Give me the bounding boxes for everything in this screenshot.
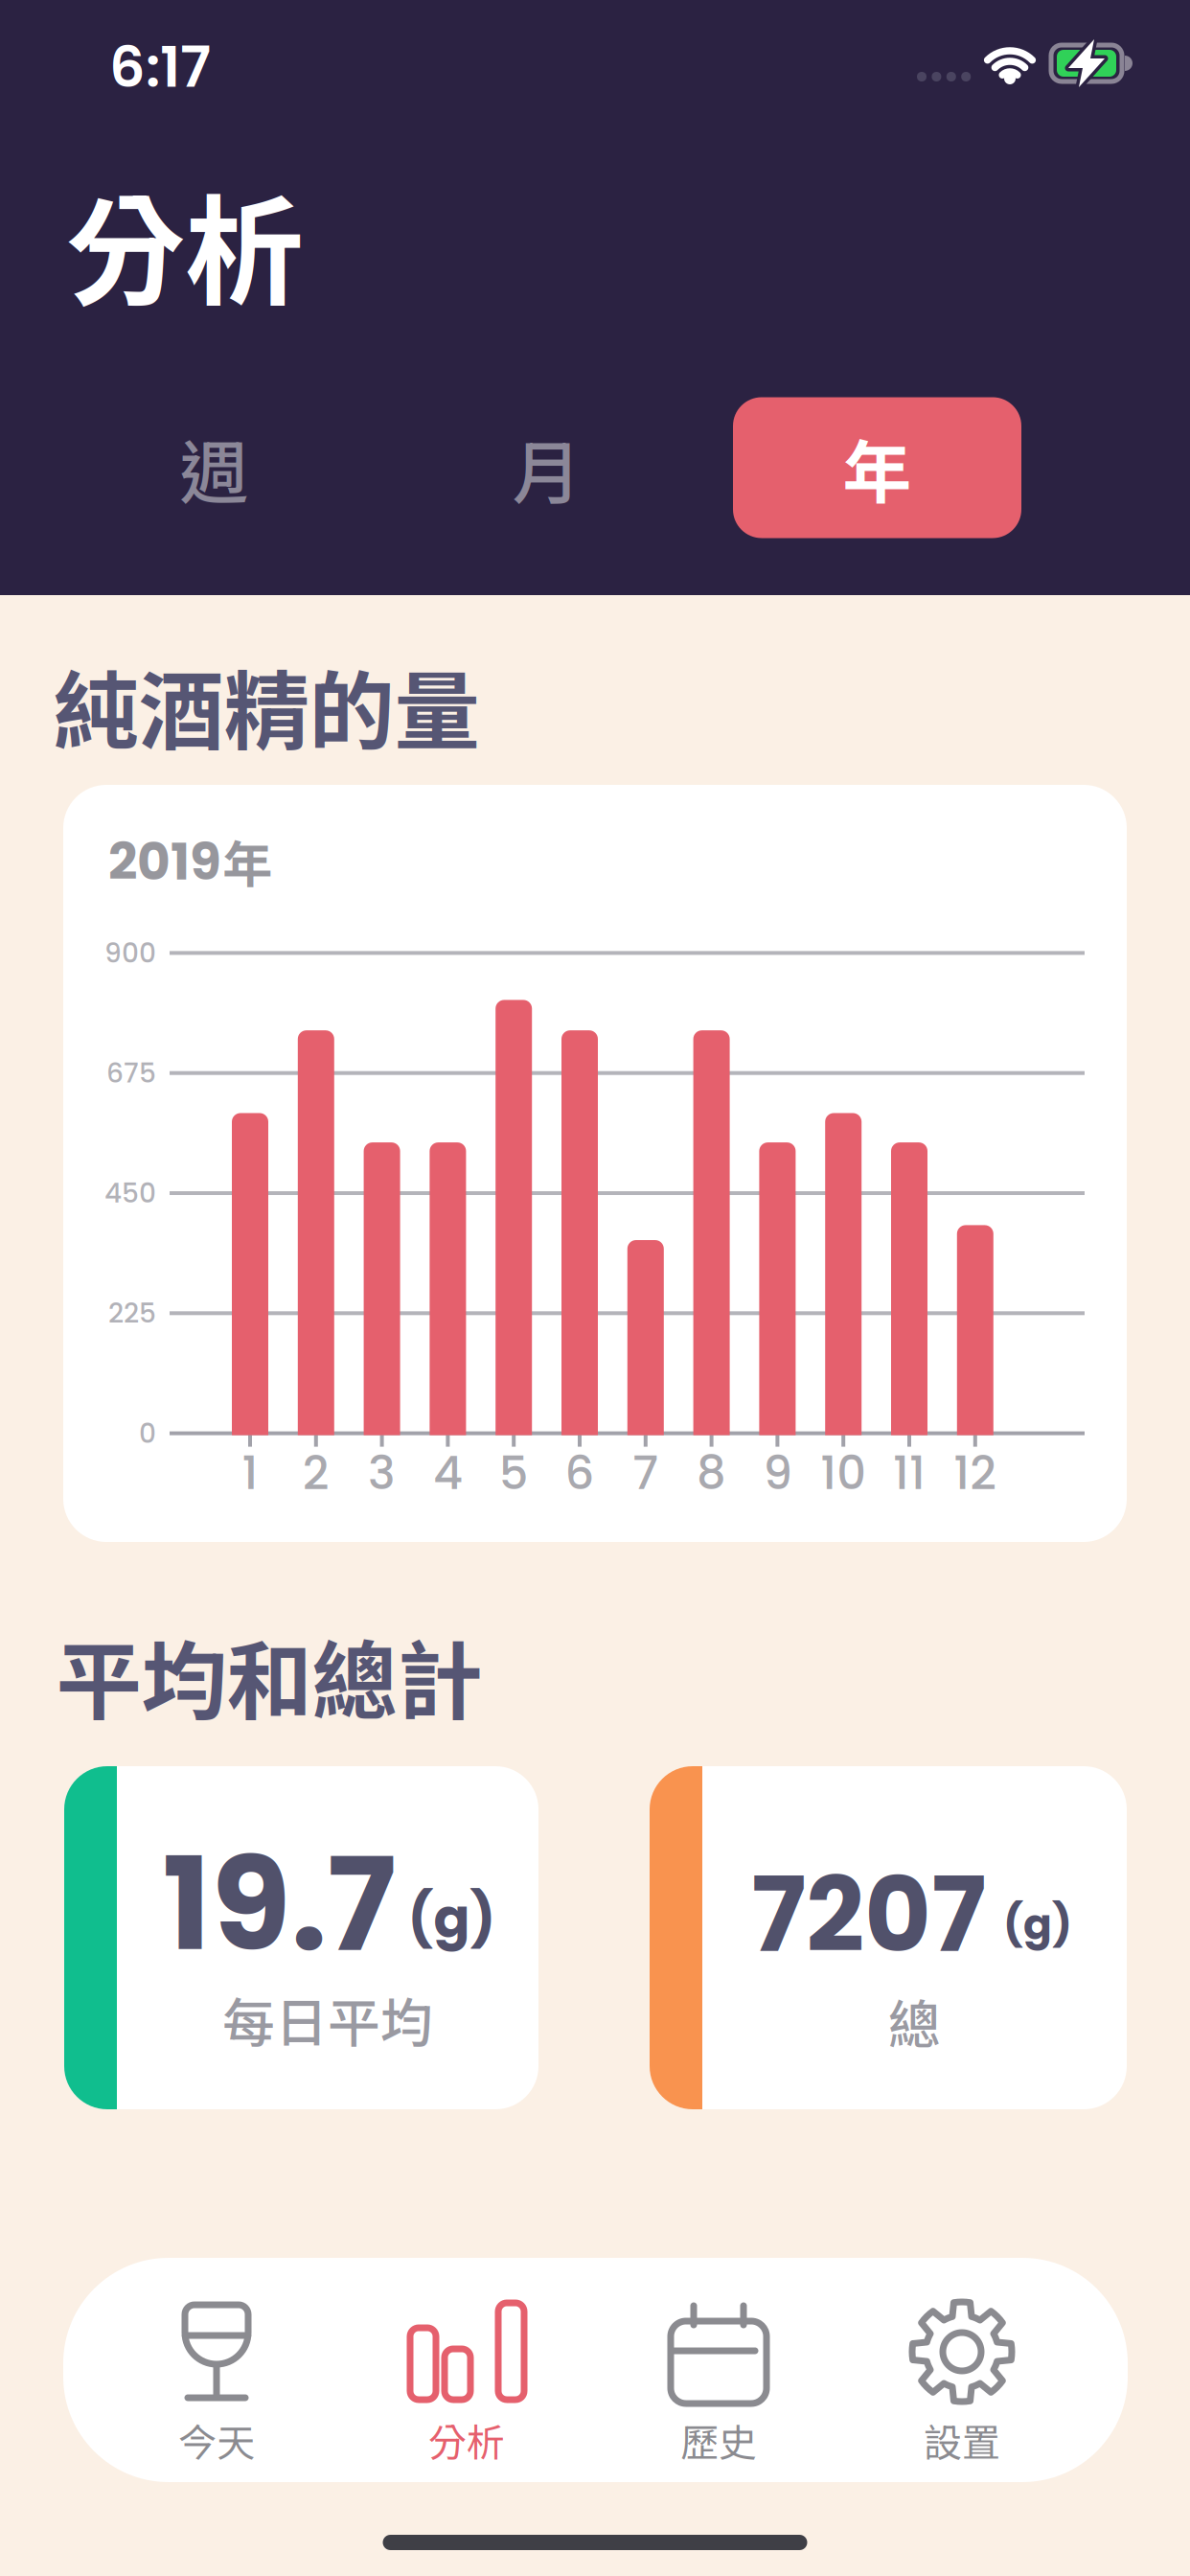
staticText: 年 xyxy=(223,825,273,897)
staticText: 2019 xyxy=(108,826,221,897)
staticText: 分析 xyxy=(66,157,304,329)
staticText: 6 xyxy=(565,1441,595,1505)
staticText: 6:17 xyxy=(109,28,211,106)
staticText: (g) xyxy=(1003,1895,1072,1954)
staticText: 2 xyxy=(303,1441,329,1505)
staticText: 1 xyxy=(242,1441,258,1505)
button[interactable]: 設置 xyxy=(828,2258,1096,2482)
staticText: 每日平均 xyxy=(222,1981,433,2057)
staticText: 900 xyxy=(104,934,156,972)
staticText: 設置 xyxy=(924,2412,1000,2468)
staticText: 3 xyxy=(368,1441,396,1505)
staticText: 4 xyxy=(433,1441,463,1505)
staticText: 週 xyxy=(180,418,249,518)
staticText: 450 xyxy=(104,1174,156,1212)
staticText: 10 xyxy=(820,1441,866,1505)
staticText: 225 xyxy=(108,1294,156,1332)
staticText: 歷史 xyxy=(680,2412,757,2468)
staticText: 5 xyxy=(499,1441,529,1505)
staticText: 12 xyxy=(954,1441,997,1505)
staticText: 分析 xyxy=(428,2412,505,2468)
staticText: 19.7 xyxy=(162,1814,396,1994)
staticText: 9 xyxy=(763,1441,792,1505)
button[interactable]: 年 xyxy=(733,397,1021,538)
staticText: 月 xyxy=(512,418,581,518)
staticText: 今天 xyxy=(178,2412,255,2468)
staticText: 年 xyxy=(843,418,912,518)
button[interactable]: 月 xyxy=(412,397,681,538)
button[interactable]: 分析 xyxy=(332,2258,601,2482)
staticText: 7207 xyxy=(751,1844,986,1987)
staticText: 7 xyxy=(633,1441,659,1505)
staticText: (g) xyxy=(408,1881,496,1956)
staticText: 平均和總計 xyxy=(56,1613,482,1737)
staticText: 總 xyxy=(888,1983,941,2059)
staticText: 0 xyxy=(139,1414,156,1452)
button[interactable]: 今天 xyxy=(82,2258,351,2482)
staticText: 8 xyxy=(697,1441,726,1505)
staticText: 純酒精的量 xyxy=(53,643,480,767)
button[interactable]: 歷史 xyxy=(584,2258,853,2482)
button[interactable]: 週 xyxy=(80,397,348,538)
staticText: 11 xyxy=(893,1441,926,1505)
staticText: 675 xyxy=(106,1054,156,1092)
